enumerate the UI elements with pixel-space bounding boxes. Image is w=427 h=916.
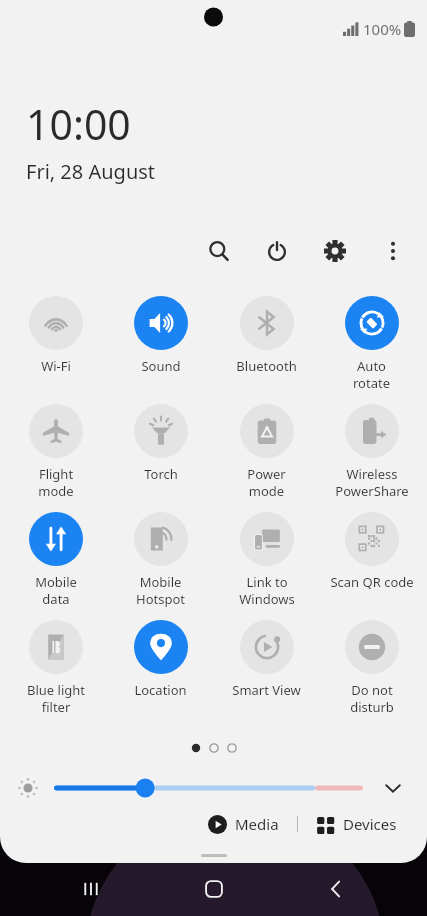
staticText: Smart View — [232, 681, 301, 699]
button[interactable]: Home — [182, 865, 246, 913]
staticText: Scan QR code — [330, 573, 414, 591]
staticText: Link to Windows — [239, 573, 295, 608]
button[interactable]: Mobile data — [6, 510, 105, 608]
staticText: 100% — [363, 19, 402, 39]
button[interactable]: Wireless PowerShare — [322, 402, 421, 500]
button[interactable]: Do not disturb — [322, 618, 421, 716]
staticText: Wireless PowerShare — [335, 465, 409, 500]
button[interactable]: Brightness — [54, 770, 363, 806]
staticText: Auto rotate — [353, 357, 390, 392]
staticText: Wi-Fi — [41, 357, 71, 375]
button[interactable]: Recent apps — [59, 865, 123, 913]
button[interactable]: Smart View — [217, 618, 316, 699]
button[interactable]: Torch — [111, 402, 210, 483]
button[interactable]: Blue light filter — [6, 618, 105, 716]
button[interactable]: Link to Windows — [217, 510, 316, 608]
button[interactable]: Bluetooth — [217, 294, 316, 375]
button[interactable]: Wi-Fi — [6, 294, 105, 375]
button[interactable]: Devices — [310, 808, 403, 840]
button[interactable]: Settings — [313, 229, 357, 273]
staticText: Blue light filter — [27, 681, 85, 716]
staticText: Torch — [144, 465, 178, 483]
staticText: Location — [134, 681, 187, 699]
button[interactable]: Flight mode — [6, 402, 105, 500]
staticText: Bluetooth — [236, 357, 297, 375]
staticText: Fri, 28 August — [26, 158, 156, 185]
button[interactable]: More options — [371, 229, 415, 273]
button[interactable]: Power — [255, 229, 299, 273]
staticText: Media — [235, 814, 279, 834]
button[interactable]: Media — [202, 808, 285, 840]
staticText: Flight mode — [38, 465, 74, 500]
button[interactable]: Location — [111, 618, 210, 699]
staticText: Sound — [141, 357, 181, 375]
staticText: Power mode — [247, 465, 286, 500]
staticText: Mobile data — [35, 573, 77, 608]
button[interactable]: Scan QR code — [322, 510, 421, 591]
staticText: Devices — [343, 814, 397, 834]
staticText: Mobile Hotspot — [136, 573, 185, 608]
button[interactable]: Power mode — [217, 402, 316, 500]
button[interactable]: Search — [197, 229, 241, 273]
staticText: Do not disturb — [350, 681, 394, 716]
button[interactable]: Back — [304, 865, 368, 913]
staticText: 10:00 — [26, 96, 131, 152]
button[interactable]: Mobile Hotspot — [111, 510, 210, 608]
button[interactable]: Expand brightness settings — [375, 770, 411, 806]
button[interactable]: Sound — [111, 294, 210, 375]
button[interactable]: Auto rotate — [322, 294, 421, 392]
